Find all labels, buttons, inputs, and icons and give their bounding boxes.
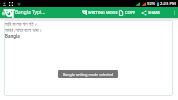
button[interactable]: More options: [172, 8, 176, 18]
button[interactable]: আমি বাংলায় গান গাই ।: [4, 20, 173, 96]
button[interactable]: COPY: [118, 7, 136, 18]
staticText: Bangla Typi...: [15, 9, 45, 16]
staticText: অ: [4, 7, 14, 23]
staticText: Bangla: [5, 33, 20, 39]
staticText: WRITING MODE: [88, 10, 118, 15]
staticText: আমি বাংলায় গান গাই ।: [5, 21, 37, 27]
staticText: অ: [82, 9, 87, 16]
button[interactable]: SHARE: [141, 7, 161, 18]
staticText: SHARE: [148, 10, 161, 15]
button[interactable]: Navigation menu: [1, 8, 5, 18]
staticText: Bangla writing mode selected: [63, 72, 114, 77]
staticText: 2:23 PM: [160, 1, 176, 7]
staticText: COPY: [125, 10, 136, 15]
staticText: 92%: [147, 1, 156, 7]
button[interactable]: অ: [81, 7, 118, 18]
staticText: আমার সোনার বাংলা ভাষা ।: [5, 27, 42, 33]
button[interactable]: Bangla Typi...: [15, 9, 45, 16]
button[interactable]: Bangla writing mode selected: [58, 70, 118, 78]
